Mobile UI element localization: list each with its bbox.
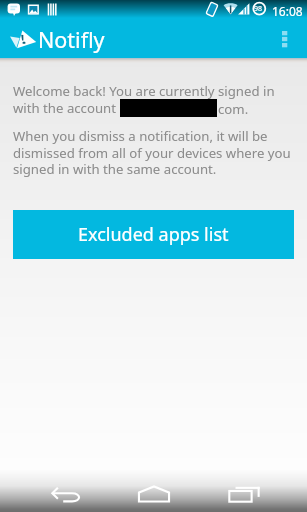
- staticText: Welcome back! You are currently signed i…: [13, 82, 275, 117]
- staticText: Notifly: [38, 25, 105, 54]
- staticText: When you dismiss a notification, it will…: [13, 127, 294, 178]
- button[interactable]: Recent apps: [223, 473, 265, 512]
- staticText: 16:08: [272, 3, 303, 19]
- staticText: com.: [218, 100, 249, 118]
- button[interactable]: Back: [45, 474, 87, 512]
- button[interactable]: Excluded apps list: [13, 210, 294, 259]
- staticText: 98: [254, 4, 263, 14]
- staticText: Excluded apps list: [78, 222, 229, 247]
- button[interactable]: Home: [132, 473, 176, 512]
- button[interactable]: More options: [269, 18, 307, 58]
